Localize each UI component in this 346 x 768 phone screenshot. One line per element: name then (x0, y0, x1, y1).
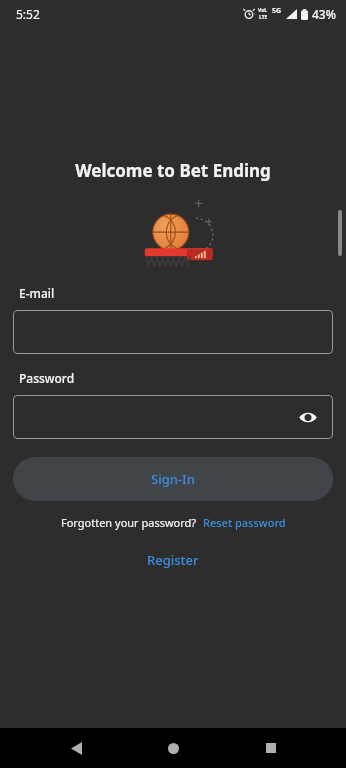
staticText: Password (19, 370, 75, 386)
button[interactable]: Show password (295, 404, 321, 430)
staticText: Reset password (203, 515, 286, 530)
staticText: 43% (312, 6, 336, 22)
staticText: VoL (258, 7, 268, 14)
button[interactable]: Show password (13, 395, 333, 439)
button[interactable]: Recent apps (249, 728, 293, 768)
staticText: E-mail (19, 285, 55, 301)
button[interactable] (13, 310, 333, 354)
staticText: Sign-In (151, 470, 195, 488)
staticText: Register (147, 551, 199, 569)
staticText: 5:52 (16, 6, 40, 22)
button[interactable]: Register (137, 548, 209, 572)
staticText: Welcome to Bet Ending (0, 159, 346, 182)
staticText: LTE (259, 14, 268, 21)
button[interactable]: Reset password (203, 515, 286, 530)
button[interactable]: Home (151, 728, 195, 768)
staticText: Forgotten your password? (61, 515, 197, 530)
button[interactable]: Sign-In (13, 457, 333, 501)
button[interactable]: Back (54, 728, 98, 768)
staticText: 5G (272, 6, 282, 16)
